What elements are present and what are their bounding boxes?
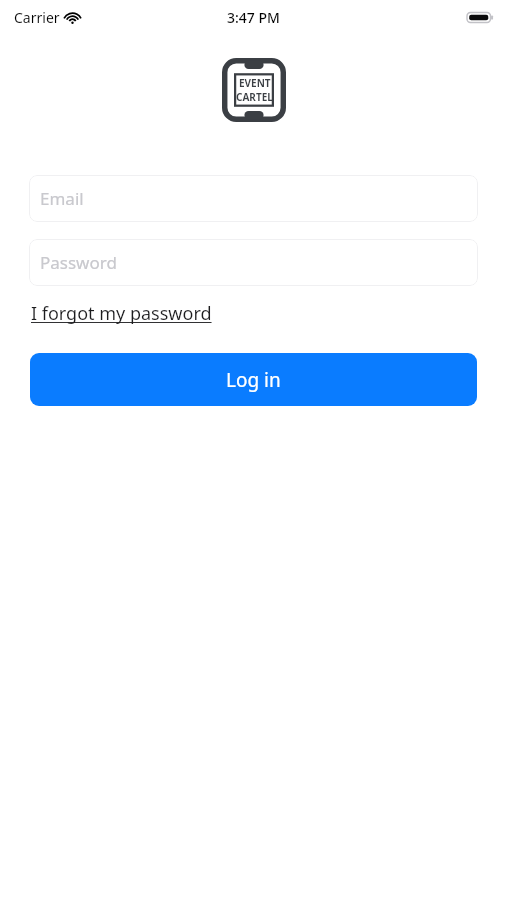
button[interactable]: Password	[29, 239, 478, 286]
button[interactable]: Email	[29, 175, 478, 222]
staticText: EVENT	[239, 76, 271, 90]
staticText: I forgot my password	[31, 301, 212, 326]
staticText: Password	[40, 251, 117, 274]
staticText: Carrier	[14, 8, 60, 27]
staticText: Email	[40, 187, 84, 210]
other: Battery full	[467, 11, 494, 24]
staticText: 3:47 PM	[227, 8, 280, 27]
staticText: CARTEL	[236, 90, 273, 104]
other: Event Cartel logo	[222, 58, 286, 122]
button[interactable]: Log in	[30, 353, 477, 406]
staticText: Log in	[226, 367, 281, 393]
button[interactable]: I forgot my password	[30, 298, 213, 329]
other: Wi-Fi	[65, 12, 80, 24]
